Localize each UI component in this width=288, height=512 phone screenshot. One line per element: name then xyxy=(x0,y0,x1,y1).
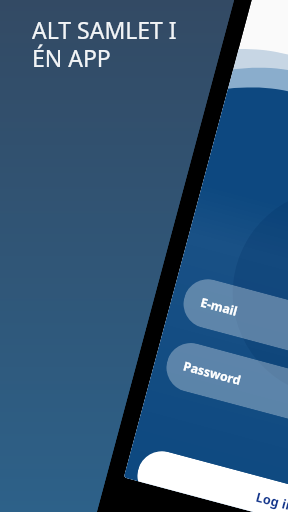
staticText: Log in xyxy=(135,456,288,512)
button[interactable]: Password xyxy=(161,337,288,458)
button[interactable]: Log in xyxy=(135,446,288,512)
staticText: E-mail xyxy=(199,294,240,320)
staticText: ALT SAMLET I ÉN APP xyxy=(32,14,177,74)
button[interactable]: E-mail xyxy=(178,274,288,394)
staticText: Password xyxy=(181,357,243,389)
